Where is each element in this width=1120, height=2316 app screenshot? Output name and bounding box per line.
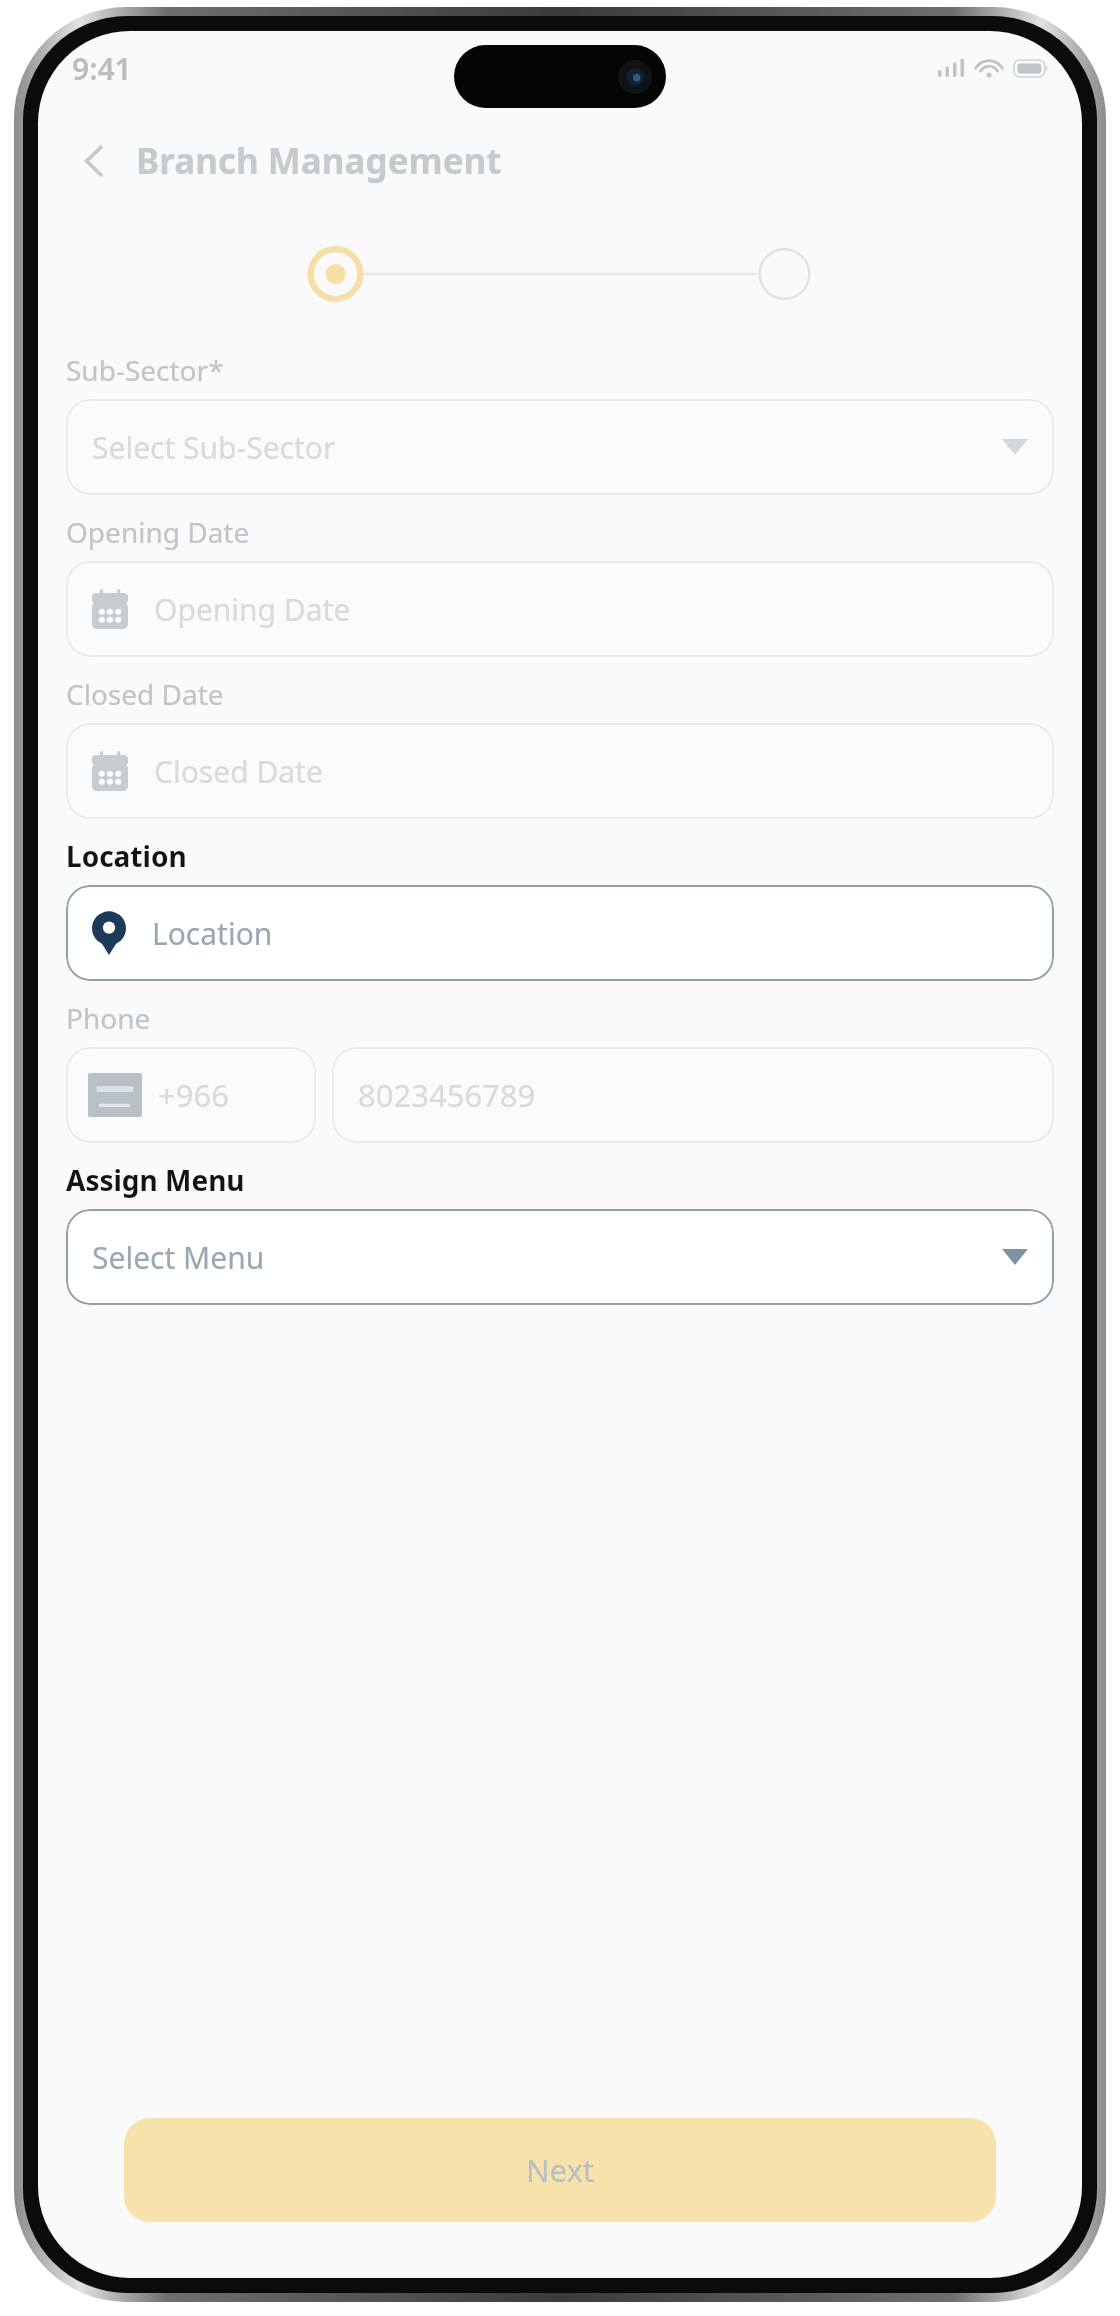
staticText: 9:41	[72, 48, 132, 89]
button[interactable]: Closed Date	[66, 723, 1054, 819]
button[interactable]: Select Menu	[66, 1209, 1054, 1305]
staticText: Closed Date	[154, 751, 323, 792]
staticText: Select Menu	[92, 1237, 265, 1278]
staticText: 8023456789	[358, 1074, 536, 1116]
staticText: Sub-Sector*	[66, 351, 224, 389]
button[interactable]: Opening Date	[66, 561, 1054, 657]
staticText: +966	[158, 1074, 229, 1116]
staticText: Select Sub-Sector	[92, 427, 336, 468]
button[interactable]: Next	[124, 2118, 996, 2222]
button[interactable]: Location	[66, 885, 1054, 981]
staticText: Assign Menu	[66, 1161, 245, 1199]
button[interactable]: Select Sub-Sector	[66, 399, 1054, 495]
button[interactable]: Back	[68, 134, 122, 188]
button[interactable]: 8023456789	[332, 1047, 1054, 1143]
staticText: Branch Management	[136, 137, 502, 185]
staticText: Next	[526, 2149, 595, 2191]
staticText: Location	[66, 837, 187, 875]
staticText: Opening Date	[154, 589, 351, 630]
staticText: Location	[152, 913, 273, 954]
button[interactable]: +966	[66, 1047, 316, 1143]
staticText: Opening Date	[66, 513, 250, 551]
staticText: Phone	[66, 999, 151, 1037]
staticText: Closed Date	[66, 675, 224, 713]
